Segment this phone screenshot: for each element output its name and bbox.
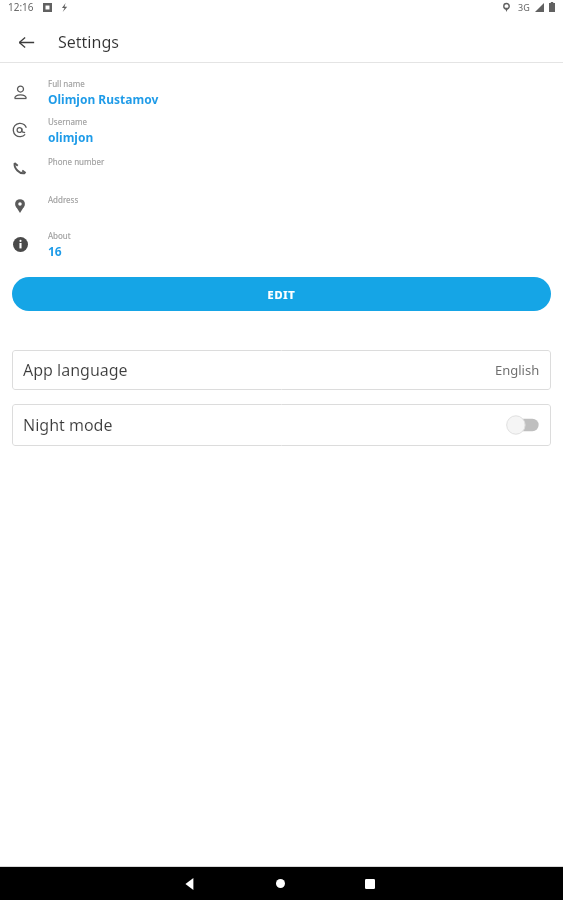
button[interactable]: Username — [0, 111, 563, 149]
button[interactable]: About — [0, 225, 563, 263]
staticText: olimjon — [48, 129, 94, 145]
staticText: Olimjon Rustamov — [48, 91, 159, 107]
button[interactable]: Night mode — [12, 404, 551, 446]
button[interactable]: EDIT — [12, 277, 551, 311]
staticText: EDIT — [267, 287, 296, 302]
staticText: Address — [48, 194, 79, 205]
button[interactable]: Back — [12, 28, 40, 56]
button[interactable]: Full name — [0, 73, 563, 111]
button[interactable]: Home — [262, 867, 298, 900]
staticText: English — [495, 361, 540, 379]
button[interactable]: Night mode toggle — [506, 415, 540, 435]
staticText: 16 — [48, 243, 62, 259]
staticText: Phone number — [48, 156, 105, 167]
button[interactable]: Phone number — [0, 149, 563, 187]
staticText: About — [48, 230, 71, 241]
staticText: App language — [23, 359, 128, 381]
staticText: 3G — [518, 1, 530, 13]
staticText: Night mode — [23, 414, 113, 436]
button[interactable]: Back — [172, 867, 208, 900]
button[interactable]: Address — [0, 187, 563, 225]
button[interactable]: Recent apps — [352, 867, 388, 900]
staticText: Settings — [58, 31, 119, 53]
staticText: 12:16 — [8, 0, 34, 14]
button[interactable]: App language — [12, 350, 551, 390]
staticText: Full name — [48, 78, 85, 89]
staticText: Username — [48, 116, 87, 127]
